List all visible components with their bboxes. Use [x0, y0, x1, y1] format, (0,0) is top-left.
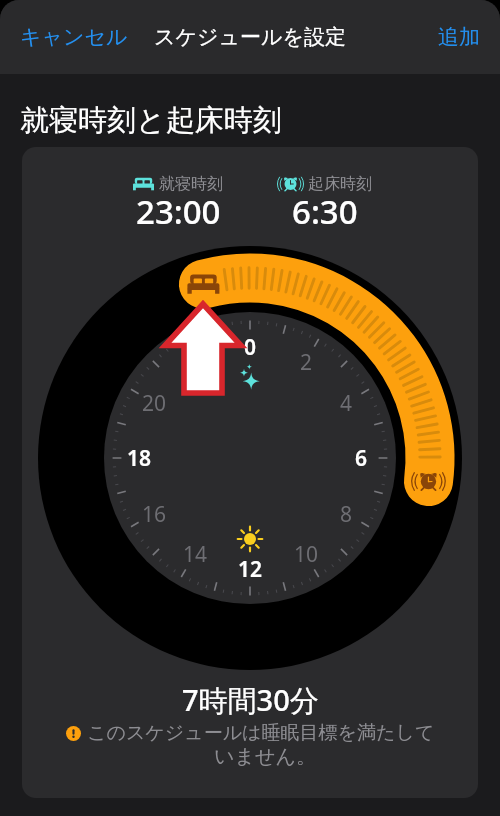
staticText: 18 — [127, 444, 152, 473]
staticText: 0 — [244, 333, 257, 362]
staticText: キャンセル — [20, 24, 128, 50]
staticText: 就寝時刻と起床時刻 — [20, 102, 282, 139]
staticText: 12 — [238, 555, 263, 584]
staticText: 起床時刻 — [308, 174, 372, 194]
staticText: 追加 — [438, 24, 480, 50]
staticText: 14 — [183, 540, 208, 569]
staticText: 16 — [142, 500, 167, 529]
staticText: スケジュールを設定 — [154, 24, 346, 50]
staticText: 10 — [294, 540, 319, 569]
staticText: 23:00 — [136, 189, 221, 234]
staticText: 20 — [142, 389, 167, 418]
staticText: 6 — [355, 444, 368, 473]
staticText: このスケジュールは睡眠目標を満たして — [87, 721, 435, 745]
staticText: いません。 — [214, 744, 316, 769]
staticText: 22 — [183, 348, 208, 377]
staticText: 2 — [300, 348, 313, 377]
staticText: 就寝時刻 — [159, 174, 223, 194]
staticText: 7時間30分 — [182, 680, 319, 720]
button[interactable]: 追加 — [426, 16, 500, 58]
staticText: 6:30 — [292, 189, 358, 234]
staticText: 8 — [340, 500, 353, 529]
staticText: 4 — [340, 389, 353, 418]
button[interactable]: キャンセル — [0, 16, 140, 58]
